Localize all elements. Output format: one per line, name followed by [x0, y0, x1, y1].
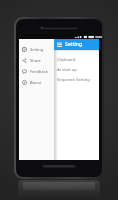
staticText: About: [30, 80, 42, 85]
staticText: Clipboard: [57, 57, 76, 62]
staticText: Share: [30, 58, 41, 63]
staticText: Setting: [65, 41, 83, 48]
button[interactable]: Clipboard: [54, 54, 99, 64]
staticText: Sequence Setting: [57, 77, 90, 82]
button[interactable]: Open navigation drawer: [56, 41, 63, 48]
button[interactable]: At start up: [54, 64, 99, 74]
staticText: Setting: [30, 47, 44, 52]
button[interactable]: Sequence Setting: [54, 74, 99, 84]
button[interactable]: Share: [19, 55, 54, 66]
staticText: Feedback: [30, 69, 48, 74]
button[interactable]: Open navigation drawer: [54, 39, 99, 50]
button[interactable]: Feedback: [19, 66, 54, 77]
button[interactable]: Setting: [19, 44, 54, 55]
staticText: At start up: [57, 67, 77, 72]
button[interactable]: About: [19, 77, 54, 88]
